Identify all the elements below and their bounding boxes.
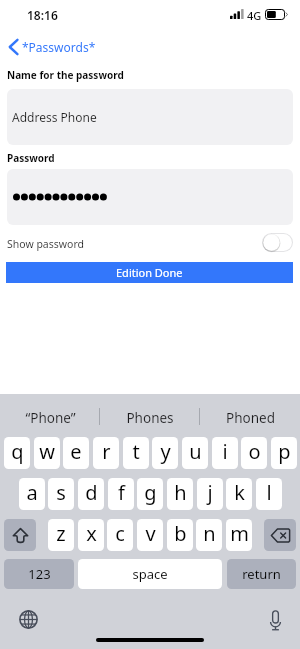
button[interactable]: x — [78, 519, 104, 551]
staticText: q — [11, 438, 24, 465]
staticText: b — [174, 520, 187, 547]
button[interactable]: 123 — [4, 559, 74, 589]
button[interactable]: b — [167, 519, 193, 551]
button[interactable]: Back — [5, 36, 102, 58]
button[interactable]: s — [48, 478, 74, 510]
button[interactable]: e — [63, 437, 89, 469]
staticText: f — [118, 479, 125, 506]
staticText: Edition Done — [116, 265, 183, 280]
button[interactable]: Backspace — [264, 519, 296, 551]
button[interactable]: k — [226, 478, 252, 510]
button[interactable]: y — [152, 437, 178, 469]
staticText: Phoned — [226, 409, 275, 427]
staticText: space — [132, 565, 168, 583]
staticText: a — [26, 479, 38, 506]
button[interactable]: Shift — [4, 519, 36, 551]
staticText: n — [203, 520, 216, 547]
staticText: d — [85, 479, 98, 506]
staticText: m — [230, 520, 249, 547]
button[interactable]: j — [197, 478, 223, 510]
button[interactable]: Address Phone — [7, 89, 293, 145]
staticText: y — [160, 438, 171, 465]
staticText: o — [248, 438, 261, 465]
button[interactable]: l — [256, 478, 282, 510]
staticText: “Phone” — [25, 409, 76, 427]
staticText: w — [39, 438, 55, 465]
button[interactable]: h — [167, 478, 193, 510]
button[interactable]: Phoned — [200, 394, 300, 436]
staticText: 18:16 — [27, 7, 58, 23]
button[interactable]: g — [137, 478, 163, 510]
staticText: e — [70, 438, 82, 465]
button[interactable]: Switch keyboard — [17, 608, 39, 630]
staticText: g — [144, 479, 157, 506]
staticText: l — [266, 479, 272, 506]
button[interactable]: i — [212, 437, 238, 469]
staticText: i — [222, 438, 228, 465]
button[interactable]: r — [93, 437, 119, 469]
button[interactable]: z — [48, 519, 74, 551]
button[interactable]: v — [137, 519, 163, 551]
staticText: r — [102, 438, 111, 465]
staticText: Address Phone — [12, 109, 97, 125]
button[interactable]: t — [123, 437, 149, 469]
button[interactable]: Phones — [100, 394, 200, 436]
staticText: j — [207, 479, 213, 506]
button[interactable]: space — [78, 559, 222, 589]
button[interactable]: p — [271, 437, 297, 469]
button[interactable]: Edition Done — [6, 262, 293, 283]
staticText: v — [145, 520, 156, 547]
button[interactable]: Dictate — [264, 609, 286, 631]
button[interactable]: f — [108, 478, 134, 510]
button[interactable] — [7, 169, 293, 225]
button[interactable]: q — [4, 437, 30, 469]
button[interactable]: d — [78, 478, 104, 510]
button[interactable]: Show password — [262, 233, 293, 252]
button[interactable]: m — [226, 519, 252, 551]
other: Back — [8, 38, 19, 56]
staticText: Name for the password — [7, 68, 124, 82]
staticText: s — [56, 479, 66, 506]
staticText: c — [115, 520, 125, 547]
staticText: Password — [7, 151, 55, 165]
staticText: 4G — [247, 8, 262, 23]
button[interactable]: return — [227, 559, 296, 589]
button[interactable]: c — [107, 519, 133, 551]
button[interactable]: “Phone” — [0, 394, 100, 436]
staticText: x — [86, 520, 97, 547]
staticText: *Passwords* — [22, 39, 96, 55]
staticText: t — [132, 438, 140, 465]
button[interactable]: u — [182, 437, 208, 469]
staticText: Phones — [126, 409, 174, 427]
staticText: p — [278, 438, 291, 465]
staticText: Show password — [7, 237, 84, 251]
button[interactable]: w — [34, 437, 60, 469]
button[interactable]: n — [196, 519, 222, 551]
staticText: z — [56, 520, 66, 547]
button[interactable]: o — [241, 437, 267, 469]
staticText: 123 — [28, 565, 51, 583]
staticText: h — [174, 479, 187, 506]
staticText: u — [189, 438, 202, 465]
staticText: return — [242, 565, 281, 583]
button[interactable]: a — [19, 478, 45, 510]
staticText: k — [234, 479, 245, 506]
